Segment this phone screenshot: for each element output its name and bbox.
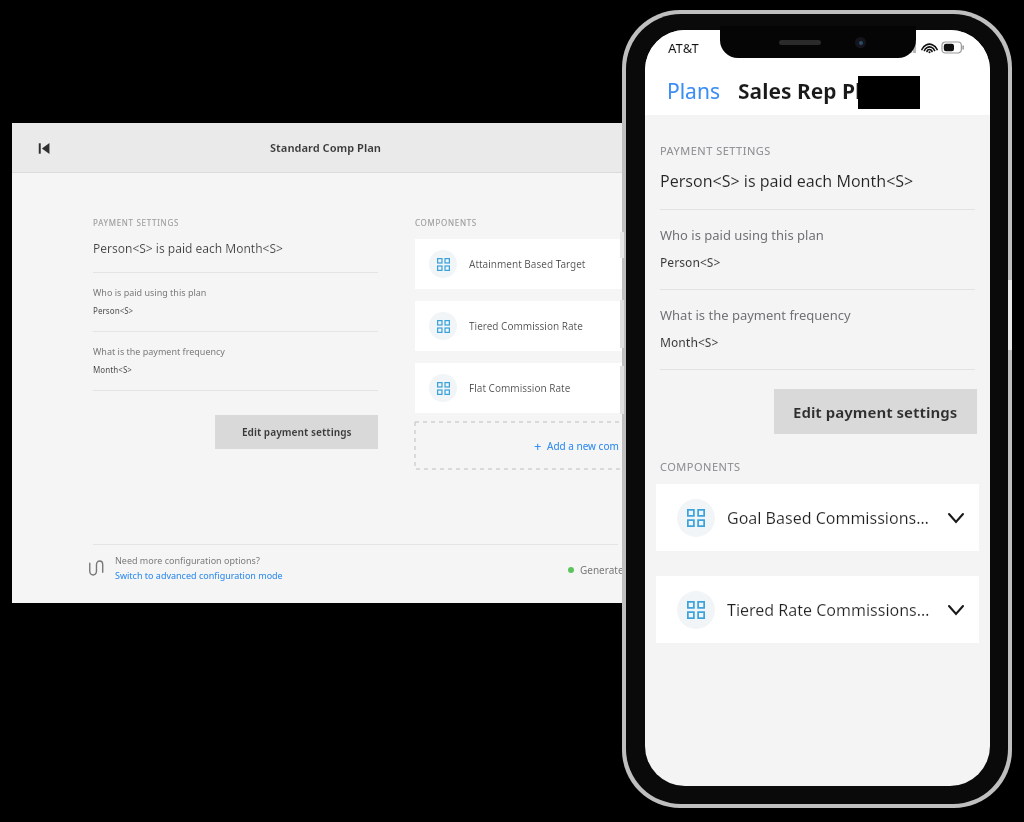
staticText: + — [534, 437, 542, 455]
button[interactable]: Plans — [667, 77, 720, 106]
staticText: What is the payment frequency — [660, 306, 851, 324]
button[interactable]: Goal Based Commissions… — [656, 484, 979, 551]
staticText: Generated — [580, 563, 630, 577]
button[interactable]: Collapse sidebar — [28, 132, 60, 164]
button[interactable]: + — [415, 422, 638, 469]
staticText: Person<S> — [93, 305, 134, 316]
staticText: PAYMENT SETTINGS — [660, 143, 771, 158]
button[interactable]: Switch to advanced configuration mode — [115, 569, 283, 581]
staticText: Sales Rep Plan — [738, 77, 888, 106]
staticText: Edit payment settings — [242, 425, 352, 439]
staticText: Add a new com — [547, 439, 619, 453]
staticText: Goal Based Commissions… — [727, 507, 939, 529]
staticText: COMPONENTS — [415, 217, 477, 228]
staticText: Who is paid using this plan — [660, 226, 824, 244]
staticText: Who is paid using this plan — [93, 286, 207, 298]
button[interactable]: Edit payment settings — [774, 389, 977, 434]
staticText: AT&T — [668, 39, 699, 57]
staticText: What is the payment frequency — [93, 345, 225, 357]
button[interactable]: Expand Tiered Rate Commissions — [939, 593, 973, 627]
button[interactable]: Tiered Rate Commissions… — [656, 576, 979, 643]
button[interactable]: Attainment Based Target — [415, 239, 638, 289]
staticText: Plans — [667, 77, 720, 106]
staticText: Person<S> is paid each Month<S> — [660, 170, 914, 192]
staticText: Person<S> is paid each Month<S> — [93, 240, 283, 256]
staticText: COMPONENTS — [660, 459, 741, 474]
staticText: Month<S> — [660, 334, 719, 350]
staticText: Tiered Rate Commissions… — [727, 599, 939, 621]
button[interactable]: Flat Commission Rate — [415, 363, 638, 413]
button[interactable]: Edit payment settings — [215, 415, 378, 449]
staticText: Month<S> — [93, 364, 132, 375]
button[interactable]: Expand Goal Based Commissions — [939, 501, 973, 535]
staticText: PAYMENT SETTINGS — [93, 217, 180, 228]
staticText: Attainment Based Target — [469, 257, 586, 271]
staticText: Need more configuration options? — [115, 554, 260, 566]
staticText: Edit payment settings — [793, 402, 958, 422]
staticText: Person<S> — [660, 254, 721, 270]
staticText: Flat Commission Rate — [469, 381, 571, 395]
staticText: Standard Comp Plan — [270, 140, 381, 155]
staticText: Tiered Commission Rate — [469, 319, 583, 333]
button[interactable]: Tiered Commission Rate — [415, 301, 638, 351]
